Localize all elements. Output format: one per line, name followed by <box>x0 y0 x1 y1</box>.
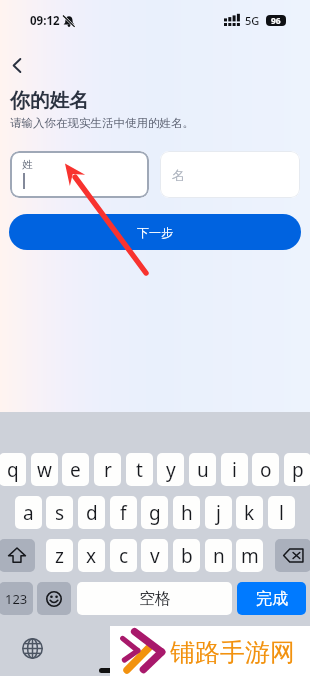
button[interactable]: Emoji <box>37 582 71 615</box>
staticText: p <box>292 457 304 483</box>
staticText: v <box>150 543 160 569</box>
button[interactable]: 123 <box>0 582 33 615</box>
staticText: n <box>213 543 225 569</box>
staticText: 完成 <box>256 589 288 609</box>
staticText: 空格 <box>139 589 171 609</box>
button[interactable]: g <box>141 496 168 529</box>
staticText: e <box>70 457 81 483</box>
button[interactable]: k <box>236 496 263 529</box>
staticText: x <box>86 543 97 569</box>
staticText: z <box>55 543 64 569</box>
button[interactable]: x <box>78 539 105 572</box>
staticText: d <box>86 500 98 526</box>
button[interactable]: 姓 <box>10 151 149 198</box>
button[interactable]: e <box>62 453 89 486</box>
staticText: 96 <box>271 15 281 26</box>
button[interactable]: j <box>205 496 232 529</box>
staticText: u <box>197 457 209 483</box>
button[interactable]: Backspace <box>275 539 310 572</box>
button[interactable]: v <box>141 539 168 572</box>
button[interactable]: r <box>94 453 121 486</box>
button[interactable]: 名 <box>160 151 300 198</box>
staticText: a <box>23 500 34 526</box>
staticText: r <box>104 457 112 483</box>
button[interactable]: p <box>284 453 310 486</box>
staticText: g <box>149 500 161 526</box>
staticText: s <box>55 500 65 526</box>
button[interactable]: l <box>268 496 295 529</box>
button[interactable]: b <box>173 539 200 572</box>
button[interactable]: n <box>205 539 232 572</box>
staticText: j <box>216 500 221 526</box>
button[interactable]: c <box>110 539 137 572</box>
button[interactable]: q <box>0 453 26 486</box>
staticText: f <box>120 500 127 526</box>
staticText: m <box>241 543 259 569</box>
button[interactable]: o <box>252 453 279 486</box>
staticText: y <box>166 457 176 483</box>
button[interactable]: t <box>126 453 153 486</box>
staticText: 名 <box>172 167 185 183</box>
staticText: q <box>7 457 19 483</box>
staticText: t <box>136 457 143 483</box>
staticText: 09:12 <box>30 13 60 29</box>
button[interactable]: s <box>46 496 73 529</box>
button[interactable]: a <box>15 496 42 529</box>
staticText: 请输入你在现实生活中使用的姓名。 <box>10 116 194 130</box>
staticText: 下一步 <box>137 225 173 240</box>
staticText: 铺路手游网 <box>170 637 295 668</box>
button[interactable]: w <box>31 453 58 486</box>
staticText: h <box>181 500 193 526</box>
staticText: c <box>119 543 129 569</box>
staticText: 你的姓名 <box>10 88 89 113</box>
button[interactable]: Switch keyboard <box>21 637 43 659</box>
staticText: o <box>260 457 272 483</box>
staticText: w <box>37 457 52 483</box>
staticText: 123 <box>5 590 28 608</box>
button[interactable]: y <box>157 453 184 486</box>
staticText: l <box>279 500 284 526</box>
staticText: 姓 <box>22 158 33 171</box>
button[interactable]: d <box>78 496 105 529</box>
button[interactable]: Back <box>6 54 28 76</box>
button[interactable]: f <box>110 496 137 529</box>
button[interactable]: Shift <box>0 539 35 572</box>
staticText: b <box>181 543 193 569</box>
button[interactable]: u <box>189 453 216 486</box>
button[interactable]: z <box>46 539 73 572</box>
staticText: k <box>244 500 255 526</box>
button[interactable]: 完成 <box>237 582 306 615</box>
staticText: i <box>232 457 237 483</box>
button[interactable]: 空格 <box>77 582 232 615</box>
staticText: 5G <box>245 13 260 28</box>
button[interactable]: i <box>221 453 248 486</box>
button[interactable]: m <box>236 539 263 572</box>
button[interactable]: h <box>173 496 200 529</box>
button[interactable]: 下一步 <box>9 214 301 250</box>
